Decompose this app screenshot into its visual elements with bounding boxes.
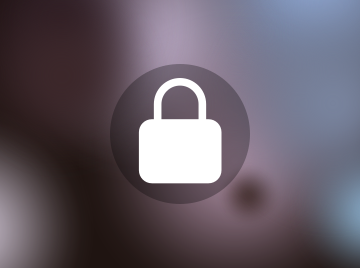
- button[interactable]: Locked: [110, 64, 250, 204]
